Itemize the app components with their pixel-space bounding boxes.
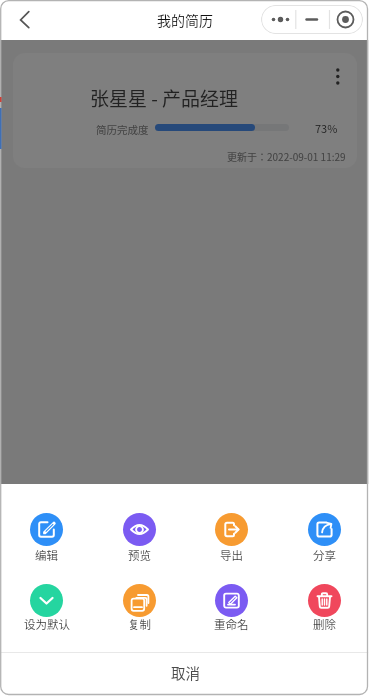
staticText: 设为默认 bbox=[24, 616, 70, 633]
button[interactable]: 复制 bbox=[93, 584, 186, 636]
staticText: 导出 bbox=[220, 547, 243, 564]
button[interactable]: 编辑 bbox=[0, 513, 93, 565]
button[interactable] bbox=[325, 53, 365, 89]
button[interactable]: 预览 bbox=[93, 513, 186, 565]
button[interactable]: 重命名 bbox=[185, 584, 278, 636]
staticText: 重命名 bbox=[214, 616, 249, 633]
staticText: 更新于：2022-09-01 11:29 bbox=[227, 149, 346, 163]
staticText: 张星星 - 产品经理 bbox=[90, 84, 239, 112]
button[interactable]: 分享 bbox=[278, 513, 370, 565]
button[interactable]: 张星星 - 产品经理 bbox=[13, 53, 357, 168]
button[interactable] bbox=[261, 5, 363, 34]
button[interactable]: 取消 bbox=[0, 653, 370, 697]
staticText: 简历完成度 bbox=[96, 122, 149, 137]
button[interactable] bbox=[8, 4, 40, 36]
button[interactable]: 删除 bbox=[278, 584, 370, 636]
staticText: 我的简历 bbox=[157, 10, 213, 30]
staticText: 删除 bbox=[313, 616, 336, 633]
button[interactable]: 导出 bbox=[185, 513, 278, 565]
staticText: 73% bbox=[315, 120, 338, 136]
button[interactable]: 设为默认 bbox=[0, 584, 93, 636]
staticText: 复制 bbox=[128, 616, 151, 633]
staticText: 预览 bbox=[128, 547, 151, 564]
staticText: 编辑 bbox=[35, 547, 58, 564]
staticText: 分享 bbox=[313, 547, 336, 564]
staticText: 取消 bbox=[171, 662, 200, 683]
